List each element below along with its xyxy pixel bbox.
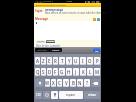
staticText: N bbox=[78, 80, 82, 86]
button[interactable]: X bbox=[51, 79, 56, 87]
staticText: Q bbox=[36, 69, 40, 75]
button[interactable]: R bbox=[53, 57, 58, 65]
staticText: retour bbox=[88, 93, 97, 97]
button[interactable]: Annuler bbox=[36, 40, 45, 43]
button[interactable]: E bbox=[47, 57, 52, 65]
button[interactable]: OK bbox=[93, 48, 100, 52]
button[interactable]: Q bbox=[35, 68, 40, 76]
staticText: Précédent bbox=[37, 49, 47, 52]
button[interactable]: W bbox=[45, 79, 50, 87]
staticText: V bbox=[65, 80, 68, 86]
staticText: ? bbox=[86, 80, 88, 86]
staticText: C bbox=[58, 80, 61, 86]
staticText: espace bbox=[66, 93, 76, 97]
staticText: Message bbox=[35, 17, 49, 21]
button[interactable]: Envoyer bbox=[46, 40, 55, 43]
button[interactable]: C bbox=[57, 79, 62, 87]
staticText: K bbox=[82, 69, 85, 75]
button[interactable]: L bbox=[87, 68, 93, 76]
staticText: I bbox=[82, 58, 84, 64]
staticText: Orange F bbox=[43, 0, 53, 3]
staticText: Nos offres ce soir envoie ci vous edit d… bbox=[45, 11, 106, 15]
button[interactable]: O bbox=[87, 57, 93, 65]
staticText: newmessage bbox=[45, 8, 64, 12]
staticText: Sujet bbox=[35, 9, 43, 13]
staticText: T bbox=[61, 58, 64, 64]
button[interactable]: Z bbox=[41, 57, 46, 65]
button[interactable]: G bbox=[59, 68, 65, 76]
staticText: E bbox=[48, 58, 51, 64]
staticText: P bbox=[96, 58, 99, 64]
staticText: 123 bbox=[36, 93, 41, 97]
button[interactable]: P bbox=[94, 57, 100, 65]
staticText: Z bbox=[42, 58, 45, 64]
staticText: X bbox=[52, 80, 55, 86]
button[interactable]: Backspace bbox=[91, 79, 100, 87]
staticText: Annuler bbox=[37, 40, 45, 43]
button[interactable]: N bbox=[77, 79, 83, 87]
button[interactable] bbox=[35, 21, 101, 40]
staticText: W bbox=[45, 80, 50, 86]
button[interactable]: U bbox=[73, 57, 79, 65]
button[interactable]: Emoji keyboard bbox=[43, 91, 50, 99]
button[interactable]: J bbox=[73, 68, 79, 76]
staticText: G bbox=[60, 69, 64, 75]
staticText: S bbox=[42, 69, 45, 75]
button[interactable]: Suivant bbox=[49, 48, 62, 52]
button[interactable]: Insert link bbox=[97, 18, 100, 21]
staticText: J bbox=[75, 69, 77, 75]
button[interactable]: ? bbox=[84, 79, 90, 87]
staticText: Ecrire un nouveau message bbox=[36, 4, 66, 7]
button[interactable]: A bbox=[35, 57, 40, 65]
button[interactable]: S bbox=[41, 68, 46, 76]
button[interactable]: espace bbox=[59, 91, 83, 99]
staticText: L bbox=[89, 69, 92, 75]
button[interactable]: T bbox=[59, 57, 65, 65]
staticText: Voir le site complet bbox=[36, 44, 61, 48]
staticText: Y bbox=[68, 58, 71, 64]
staticText: B bbox=[72, 80, 75, 86]
button[interactable]: Y bbox=[66, 57, 72, 65]
staticText: Suivant bbox=[52, 49, 60, 52]
staticText: H bbox=[67, 69, 71, 75]
button[interactable]: Voir le site complet bbox=[36, 44, 61, 48]
button[interactable]: Attach file bbox=[93, 18, 96, 21]
button[interactable]: Précédent bbox=[35, 48, 49, 52]
button[interactable]: H bbox=[66, 68, 72, 76]
button[interactable]: V bbox=[63, 79, 69, 87]
button[interactable]: Dictation bbox=[51, 91, 58, 99]
button[interactable]: D bbox=[47, 68, 52, 76]
button[interactable]: I bbox=[80, 57, 86, 65]
staticText: 14:32 bbox=[66, 0, 72, 3]
staticText: F bbox=[54, 69, 57, 75]
staticText: D bbox=[48, 69, 52, 75]
button[interactable]: B bbox=[70, 79, 76, 87]
button[interactable]: 123 bbox=[35, 91, 42, 99]
button[interactable]: retour bbox=[84, 91, 100, 99]
staticText: OK bbox=[95, 49, 99, 52]
staticText: Envoyer bbox=[47, 40, 55, 43]
button[interactable]: F bbox=[53, 68, 58, 76]
staticText: M bbox=[95, 69, 100, 75]
staticText: O bbox=[88, 58, 92, 64]
button[interactable]: K bbox=[80, 68, 86, 76]
button[interactable]: Shift bbox=[35, 79, 44, 87]
staticText: A bbox=[36, 58, 39, 64]
staticText: U bbox=[74, 58, 78, 64]
staticText: R bbox=[54, 58, 57, 64]
button[interactable]: M bbox=[94, 68, 100, 76]
